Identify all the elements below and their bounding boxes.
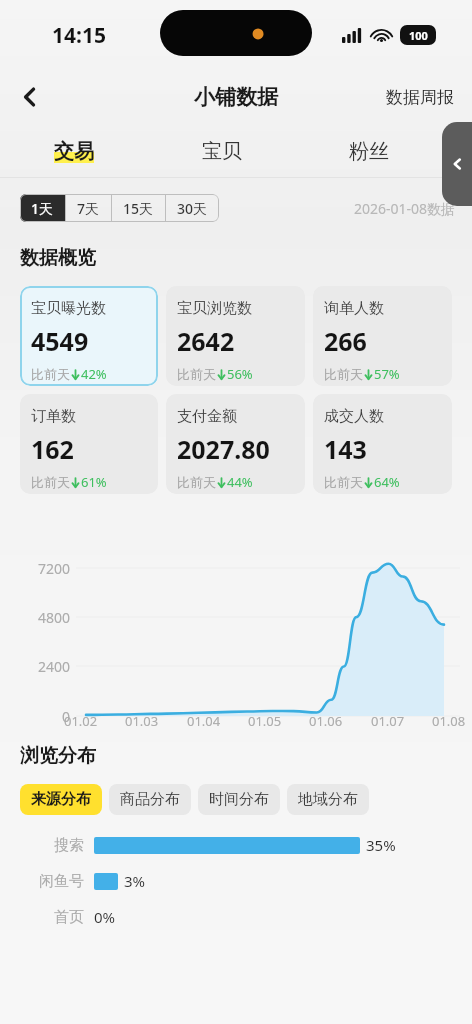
staticText: 数据概览	[20, 246, 96, 270]
button[interactable]: 宝贝曝光数	[20, 286, 158, 386]
button[interactable]: Expand side panel	[442, 122, 472, 206]
button[interactable]: 支付金额	[166, 394, 305, 494]
button[interactable]: 交易	[0, 124, 148, 178]
staticText: 粉丝	[349, 139, 389, 164]
staticText: 42%	[81, 365, 107, 383]
staticText: 4549	[31, 324, 89, 358]
staticText: 01.02	[64, 712, 98, 730]
staticText: 0%	[94, 907, 116, 927]
staticText: 64%	[374, 473, 400, 491]
staticText: 100	[409, 28, 428, 43]
staticText: 1天	[31, 199, 54, 218]
staticText: 首页	[20, 908, 84, 927]
staticText: 宝贝	[202, 139, 242, 164]
staticText: 35%	[366, 835, 396, 855]
staticText: 30天	[177, 199, 208, 218]
staticText: 支付金额	[177, 407, 237, 426]
staticText: 7200	[0, 559, 70, 578]
button[interactable]: 7天	[66, 194, 111, 222]
button[interactable]: 15天	[112, 194, 165, 222]
button[interactable]: 宝贝浏览数	[166, 286, 305, 386]
staticText: 2027.80	[177, 432, 270, 466]
button[interactable]: 时间分布	[198, 784, 280, 815]
staticText: 2642	[177, 324, 235, 358]
staticText: 14:15	[52, 21, 106, 50]
staticText: 0	[0, 707, 70, 726]
button[interactable]: 数据周报	[378, 79, 462, 116]
button[interactable]: 成交人数	[313, 394, 452, 494]
button[interactable]: 订单数	[20, 394, 158, 494]
button[interactable]: 地域分布	[287, 784, 369, 815]
staticText: 01.06	[309, 712, 343, 730]
staticText: 7天	[77, 199, 100, 218]
staticText: 143	[324, 432, 367, 466]
staticText: 44%	[227, 473, 253, 491]
staticText: 小铺数据	[194, 84, 278, 110]
staticText: 宝贝曝光数	[31, 299, 106, 318]
staticText: 时间分布	[209, 790, 269, 809]
button[interactable]: Back	[8, 75, 52, 119]
staticText: 比前天	[324, 366, 363, 382]
button[interactable]: 30天	[166, 194, 219, 222]
staticText: 闲鱼号	[20, 872, 84, 891]
button[interactable]: 宝贝	[148, 124, 295, 178]
staticText: 比前天	[177, 366, 216, 382]
staticText: 61%	[81, 473, 107, 491]
staticText: 交易	[54, 139, 94, 164]
staticText: 来源分布	[31, 790, 91, 809]
staticText: 比前天	[324, 474, 363, 490]
staticText: 56%	[227, 365, 253, 383]
staticText: 商品分布	[120, 790, 180, 809]
staticText: 266	[324, 324, 367, 358]
staticText: 成交人数	[324, 407, 384, 426]
staticText: 搜索	[20, 836, 84, 855]
staticText: 订单数	[31, 407, 76, 426]
staticText: 162	[31, 432, 74, 466]
staticText: 2026-01-08数据	[354, 199, 456, 218]
staticText: 01.08	[432, 712, 466, 730]
staticText: 浏览分布	[20, 744, 96, 768]
staticText: 地域分布	[298, 790, 358, 809]
staticText: 询单人数	[324, 299, 384, 318]
button[interactable]: 1天	[20, 194, 65, 222]
button[interactable]: 询单人数	[313, 286, 452, 386]
staticText: 01.03	[125, 712, 159, 730]
button[interactable]: 来源分布	[20, 784, 102, 815]
staticText: 01.05	[248, 712, 282, 730]
staticText: 01.04	[187, 712, 221, 730]
button[interactable]: 商品分布	[109, 784, 191, 815]
staticText: 57%	[374, 365, 400, 383]
staticText: 比前天	[177, 474, 216, 490]
staticText: 宝贝浏览数	[177, 299, 252, 318]
staticText: 2400	[0, 657, 70, 676]
staticText: 4800	[0, 608, 70, 627]
staticText: 比前天	[31, 366, 70, 382]
staticText: 数据周报	[386, 87, 454, 108]
staticText: 比前天	[31, 474, 70, 490]
staticText: 3%	[124, 871, 146, 891]
staticText: 01.07	[371, 712, 405, 730]
button[interactable]: 粉丝	[295, 124, 442, 178]
staticText: 15天	[123, 199, 154, 218]
